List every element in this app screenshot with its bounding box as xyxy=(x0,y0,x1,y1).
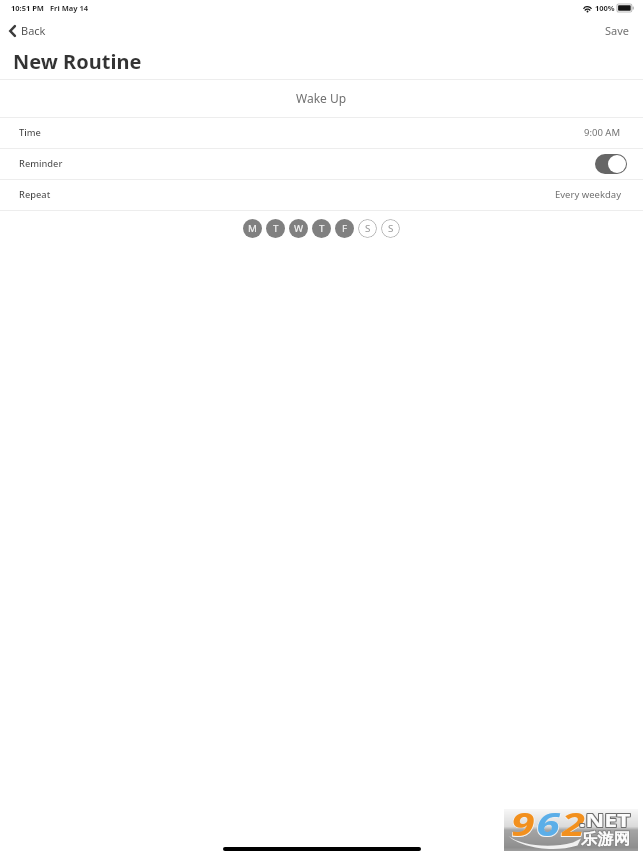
staticText: 乐游网 xyxy=(580,831,629,850)
staticText: .NET xyxy=(578,807,630,832)
staticText: Repeat xyxy=(19,188,51,201)
staticText: 100% xyxy=(595,3,615,13)
button[interactable]: Repeat xyxy=(0,179,643,210)
staticText: 9 xyxy=(511,802,536,844)
button[interactable]: F xyxy=(335,219,354,238)
staticText: 9:00 AM xyxy=(584,126,621,139)
staticText: 乐游网 xyxy=(582,831,631,850)
staticText: T xyxy=(273,222,279,235)
staticText: Reminder xyxy=(19,157,63,170)
staticText: 2 xyxy=(561,801,588,845)
staticText: Save xyxy=(605,23,630,38)
other: Wi-Fi signal xyxy=(583,5,592,12)
button[interactable]: M xyxy=(243,219,262,238)
staticText: 乐游网 xyxy=(580,830,629,849)
staticText: 乐游网 xyxy=(580,829,629,848)
button[interactable]: S xyxy=(381,219,400,238)
staticText: Wake Up xyxy=(296,90,347,106)
staticText: .NET xyxy=(580,809,632,834)
staticText: .NET xyxy=(579,808,631,833)
staticText: Time xyxy=(19,126,41,139)
staticText: 2 xyxy=(561,802,587,844)
staticText: .NET xyxy=(578,809,630,834)
staticText: New Routine xyxy=(13,48,142,75)
staticText: .NET xyxy=(579,809,631,834)
staticText: W xyxy=(294,222,304,235)
staticText: Fri May 14 xyxy=(50,3,89,13)
button[interactable]: T xyxy=(266,219,285,238)
button[interactable]: Save xyxy=(595,20,643,41)
button[interactable]: Back xyxy=(0,20,54,41)
staticText: .NET xyxy=(579,807,631,832)
button[interactable]: S xyxy=(358,219,377,238)
button[interactable]: Reminder toggle xyxy=(595,154,627,174)
staticText: 乐游网 xyxy=(582,830,631,849)
staticText: 6 xyxy=(535,801,562,845)
button[interactable]: Time xyxy=(0,117,643,148)
staticText: 6 xyxy=(536,802,562,844)
other: Battery full xyxy=(617,4,634,12)
staticText: M xyxy=(248,222,257,235)
staticText: .NET xyxy=(580,808,632,833)
button[interactable]: W xyxy=(289,219,308,238)
staticText: S xyxy=(365,222,371,235)
staticText: T xyxy=(319,222,325,235)
staticText: 9 xyxy=(510,801,537,845)
other: Back xyxy=(9,25,16,37)
staticText: Every weekday xyxy=(555,188,621,201)
staticText: 乐游网 xyxy=(582,829,631,848)
staticText: .NET xyxy=(578,808,630,833)
staticText: 乐游网 xyxy=(581,830,630,849)
staticText: F xyxy=(342,222,348,235)
staticText: Back xyxy=(21,23,46,38)
staticText: 乐游网 xyxy=(581,831,630,850)
staticText: 10:51 PM xyxy=(11,3,44,13)
button[interactable]: T xyxy=(312,219,331,238)
staticText: S xyxy=(388,222,394,235)
staticText: .NET xyxy=(580,807,632,832)
staticText: 乐游网 xyxy=(581,829,630,848)
